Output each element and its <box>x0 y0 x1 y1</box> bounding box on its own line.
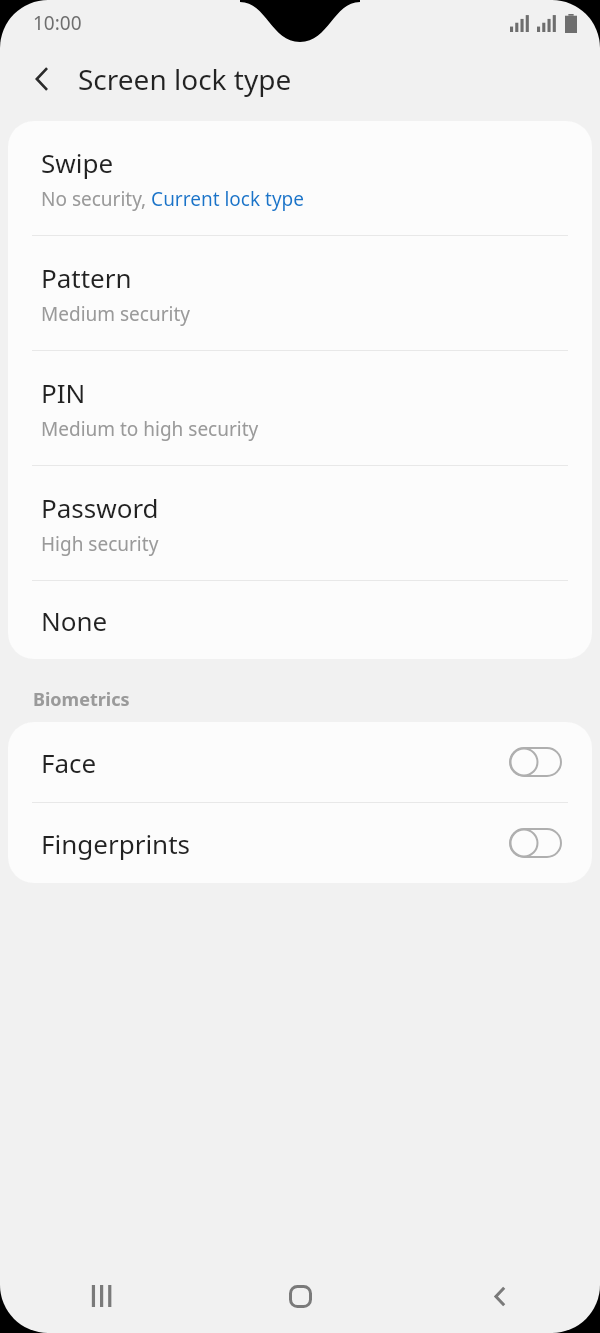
staticText: Medium to high security <box>41 416 259 442</box>
button[interactable]: Fingerprints <box>8 803 592 883</box>
button[interactable]: Back <box>16 53 68 105</box>
button[interactable]: Recents <box>0 1259 200 1333</box>
button[interactable]: Face <box>8 722 592 802</box>
staticText: PIN <box>41 375 86 410</box>
staticText: Biometrics <box>33 687 130 712</box>
staticText: Fingerprints <box>41 826 509 861</box>
button[interactable]: Back <box>400 1259 600 1333</box>
button[interactable]: Swipe <box>8 121 592 235</box>
staticText: Swipe <box>41 145 114 180</box>
staticText: 10:00 <box>33 10 82 36</box>
staticText: High security <box>41 531 159 557</box>
staticText: Medium security <box>41 301 190 327</box>
staticText: Screen lock type <box>78 60 292 98</box>
button[interactable]: None <box>8 581 592 659</box>
button[interactable]: Home <box>200 1259 400 1333</box>
button[interactable]: Password <box>8 466 592 580</box>
staticText: Pattern <box>41 260 132 295</box>
staticText: Face <box>41 745 509 780</box>
staticText: None <box>41 603 108 638</box>
staticText: Password <box>41 490 159 525</box>
button[interactable]: Pattern <box>8 236 592 350</box>
staticText: No security, Current lock type <box>41 186 304 212</box>
button[interactable]: PIN <box>8 351 592 465</box>
